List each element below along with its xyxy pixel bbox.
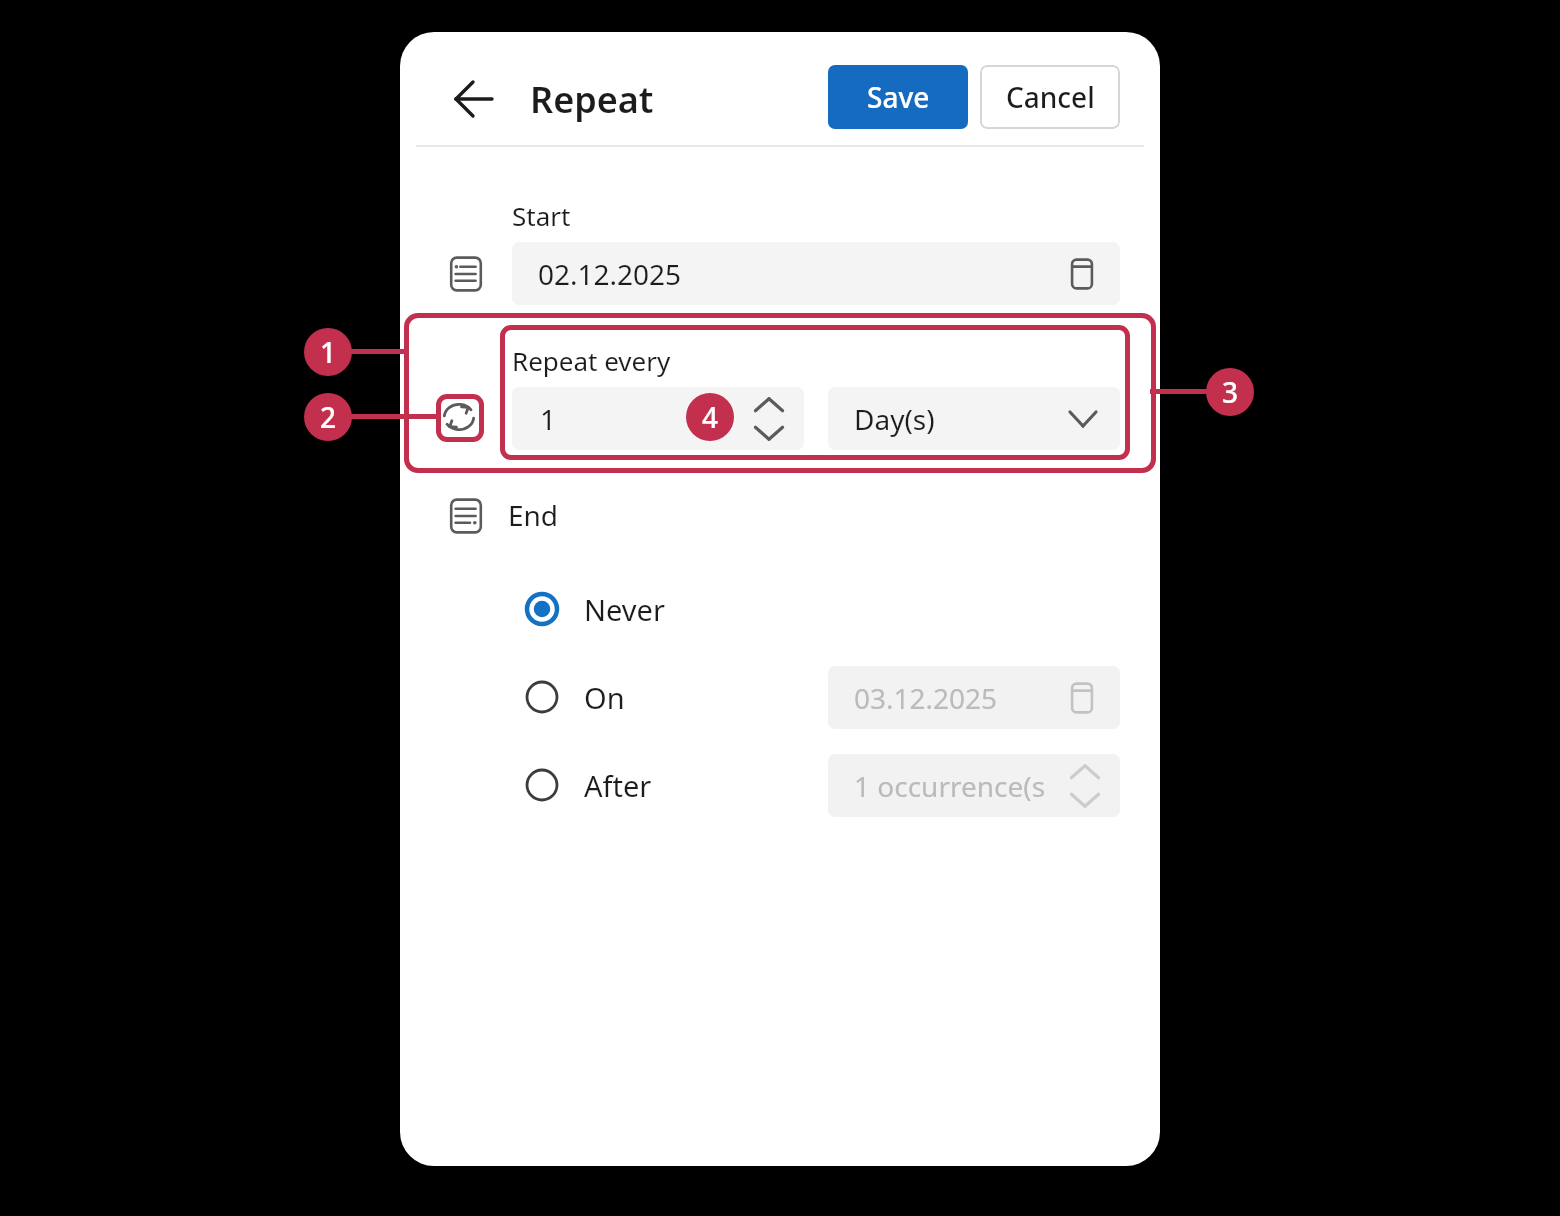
button[interactable]: Increase or decrease occurrences <box>1068 763 1102 809</box>
staticText: 03.12.2025 <box>854 679 998 717</box>
staticText: 1 <box>540 400 557 438</box>
staticText: 3 <box>1222 373 1239 411</box>
button[interactable]: Increase or decrease <box>752 396 786 442</box>
staticText: Cancel <box>1006 78 1095 116</box>
staticText: After <box>584 766 652 805</box>
staticText: On <box>584 678 625 717</box>
button[interactable]: Cancel <box>980 65 1120 129</box>
staticText: 02.12.2025 <box>538 255 682 293</box>
button[interactable]: 1 <box>512 387 804 450</box>
button[interactable]: 1 occurrence(s <box>828 754 1120 817</box>
button[interactable]: 03.12.2025 <box>828 666 1120 729</box>
button[interactable]: 02.12.2025 <box>512 242 1120 305</box>
staticText: Repeat <box>530 75 654 124</box>
button[interactable]: Repeat <box>438 396 480 438</box>
staticText: Day(s) <box>854 400 935 438</box>
staticText: End <box>508 496 559 534</box>
staticText: 4 <box>702 398 719 436</box>
staticText: 1 <box>320 333 337 371</box>
button[interactable]: Day(s) <box>828 387 1120 450</box>
staticText: Never <box>584 590 665 629</box>
staticText: 1 occurrence(s <box>854 767 1046 805</box>
button[interactable]: On <box>524 668 784 726</box>
staticText: 2 <box>320 398 337 436</box>
button[interactable]: Save <box>828 65 968 129</box>
button[interactable]: Never <box>524 580 784 638</box>
button[interactable]: Back <box>444 70 502 128</box>
button[interactable]: After <box>524 756 784 814</box>
staticText: Start <box>512 198 571 233</box>
staticText: Save <box>867 78 930 116</box>
staticText: Repeat every <box>512 343 671 378</box>
